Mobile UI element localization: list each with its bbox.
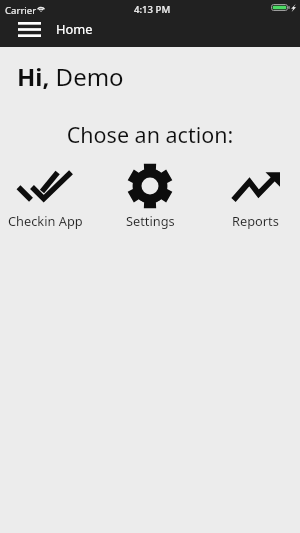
staticText: Hi, Demo	[17, 60, 124, 93]
button[interactable]: Reports	[210, 162, 300, 229]
staticText: Checkin App	[8, 212, 83, 229]
staticText: Chose an action:	[0, 120, 300, 149]
button[interactable]: Checkin App	[0, 162, 90, 229]
staticText: Carrier	[5, 4, 37, 17]
staticText: 4:13 PM	[134, 3, 171, 16]
staticText: Reports	[232, 212, 279, 229]
button[interactable]: Open navigation menu	[8, 20, 50, 46]
button[interactable]: Settings	[105, 162, 195, 229]
staticText: Settings	[126, 212, 175, 229]
staticText: Home	[56, 20, 93, 37]
